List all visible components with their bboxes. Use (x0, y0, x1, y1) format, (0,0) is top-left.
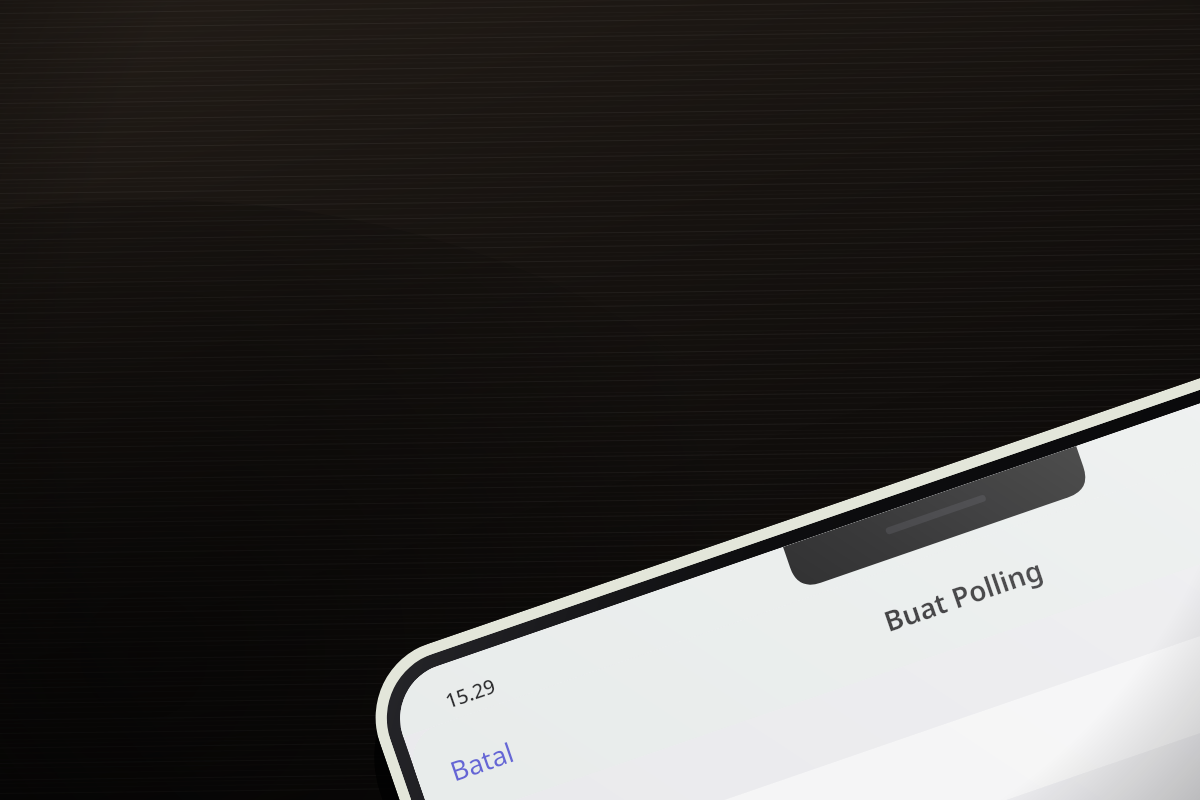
button[interactable]: Tambah (533, 677, 1200, 800)
staticText: Buat Polling (879, 550, 1048, 640)
button[interactable]: Tambah (562, 761, 1200, 800)
button[interactable]: Batal (445, 733, 519, 789)
button[interactable]: Ajukan pertanyaan (481, 525, 1200, 800)
staticText: 15.29 (442, 672, 500, 714)
